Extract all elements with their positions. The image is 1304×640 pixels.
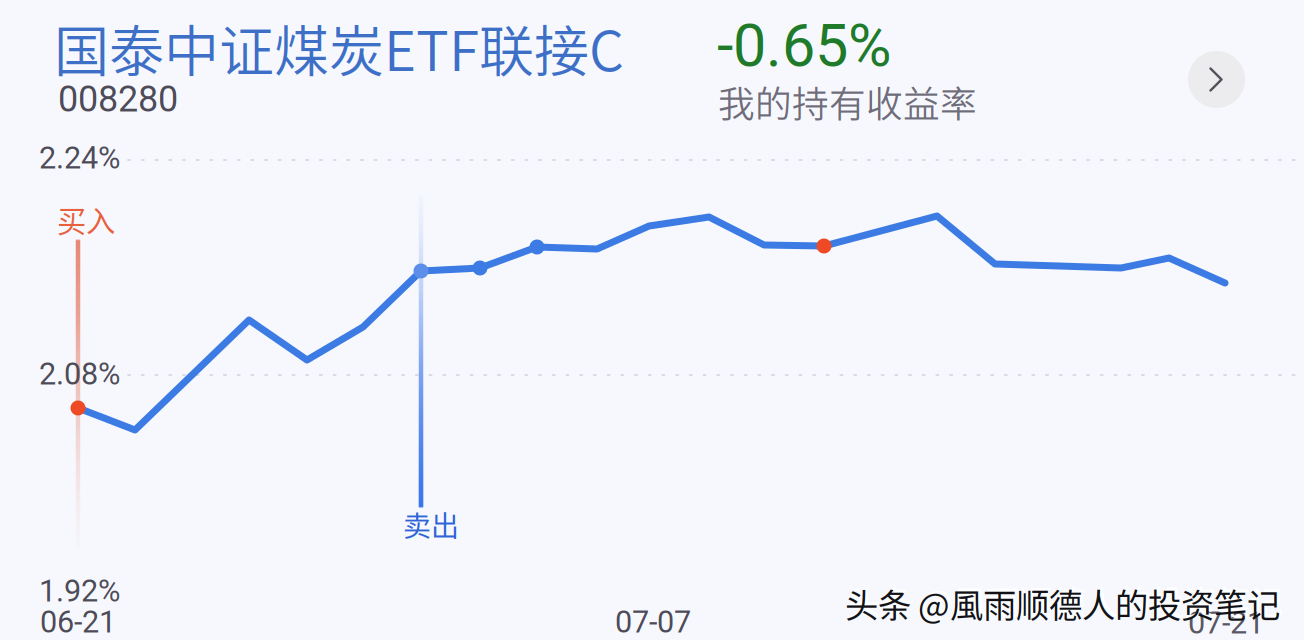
- staticText: 卖出: [403, 504, 459, 544]
- staticText: 07-21: [1188, 605, 1264, 640]
- staticText: 2.24%: [39, 140, 120, 176]
- staticText: 买入: [57, 198, 115, 240]
- staticText: 1.92%: [39, 573, 120, 609]
- staticText: 2.08%: [39, 356, 120, 392]
- button[interactable]: 查看详情: [1188, 51, 1245, 108]
- staticText: -0.65%: [717, 11, 891, 80]
- staticText: 头条 @風雨顺德人的投资笔记: [845, 579, 1280, 627]
- staticText: 头条 @風雨顺德人的投资笔记: [848, 576, 1283, 624]
- staticText: 国泰中证煤炭ETF联接C: [54, 7, 624, 87]
- staticText: 008280: [58, 78, 178, 120]
- staticText: 06-21: [40, 604, 116, 640]
- staticText: 我的持有收益率: [718, 75, 977, 128]
- staticText: 07-07: [615, 604, 691, 640]
